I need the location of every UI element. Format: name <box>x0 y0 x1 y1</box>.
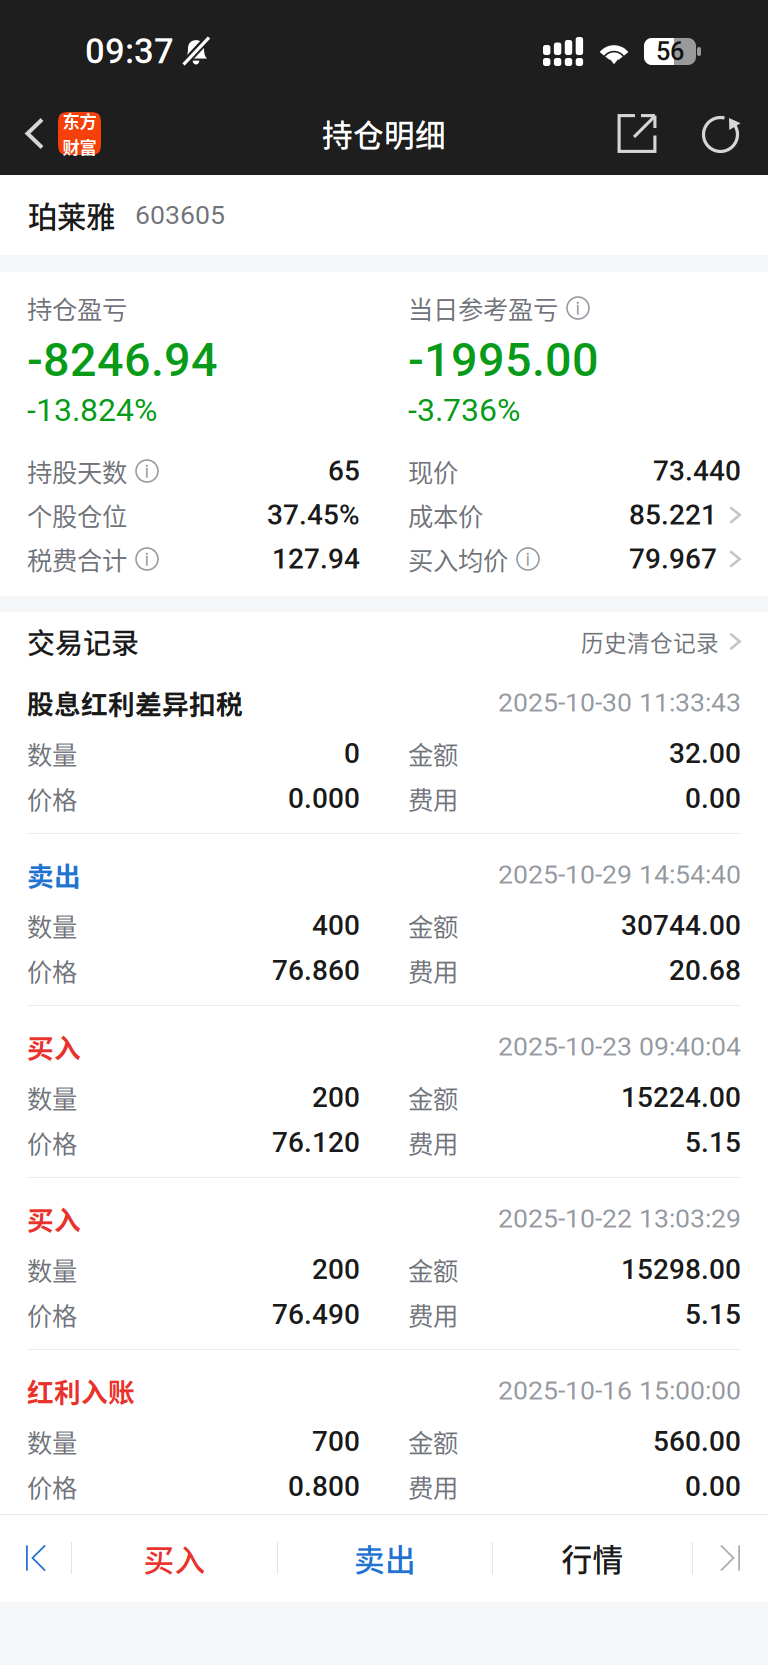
staticText: 15224.00 <box>621 1081 741 1114</box>
staticText: 32.00 <box>669 737 741 770</box>
staticText: 红利入账 <box>27 1371 135 1410</box>
staticText: 东方 <box>62 108 96 133</box>
staticText: 73.440 <box>653 455 741 487</box>
staticText: 行情 <box>561 1536 623 1580</box>
staticText: 持股天数 <box>27 453 127 489</box>
staticText: 数量 <box>27 1251 77 1288</box>
staticText: 个股仓位 <box>27 497 127 533</box>
staticText: 85.221 <box>629 499 717 531</box>
staticText: 5.15 <box>685 1298 741 1331</box>
staticText: 珀莱雅 <box>28 194 115 236</box>
staticText: 价格 <box>27 952 77 989</box>
staticText: 价格 <box>27 780 77 817</box>
staticText: 37.45% <box>267 499 360 531</box>
staticText: 费用 <box>408 1468 458 1505</box>
button[interactable]: Next stock <box>693 1514 767 1602</box>
staticText: 卖出 <box>27 855 81 894</box>
staticText: -8246.94 <box>27 333 218 387</box>
staticText: i <box>525 548 530 570</box>
staticText: 0.00 <box>685 1470 741 1503</box>
staticText: 持仓明细 <box>322 111 446 156</box>
staticText: 买入 <box>27 1199 81 1238</box>
staticText: 买入 <box>27 1027 81 1066</box>
staticText: 56 <box>656 37 684 66</box>
staticText: 财富 <box>62 134 96 159</box>
staticText: 2025-10-23 09:40:04 <box>498 1031 741 1062</box>
staticText: 成本价 <box>408 497 483 533</box>
staticText: 金额 <box>408 735 458 772</box>
staticText: 金额 <box>408 1079 458 1116</box>
button[interactable]: Back <box>19 100 51 166</box>
staticText: 76.860 <box>272 954 360 987</box>
staticText: 历史清仓记录 <box>581 625 719 658</box>
staticText: 价格 <box>27 1124 77 1161</box>
staticText: 数量 <box>27 907 77 944</box>
staticText: 价格 <box>27 1468 77 1505</box>
staticText: 15298.00 <box>621 1253 741 1286</box>
staticText: 股息红利差异扣税 <box>27 683 243 722</box>
staticText: 2025-10-30 11:33:43 <box>498 687 741 718</box>
staticText: -13.824% <box>27 391 157 429</box>
button[interactable]: First stock <box>1 1514 71 1602</box>
staticText: 金额 <box>408 1423 458 1460</box>
staticText: 603605 <box>135 199 225 231</box>
staticText: 交易记录 <box>27 621 139 662</box>
staticText: 0.00 <box>685 782 741 815</box>
staticText: i <box>144 548 149 570</box>
staticText: 09:37 <box>85 31 174 72</box>
staticText: 400 <box>312 909 360 942</box>
staticText: i <box>144 460 149 482</box>
staticText: 20.68 <box>669 954 741 987</box>
staticText: 2025-10-16 15:00:00 <box>498 1375 741 1406</box>
staticText: 价格 <box>27 1296 77 1333</box>
button[interactable]: Refresh <box>690 100 752 166</box>
staticText: -1995.00 <box>408 333 599 387</box>
staticText: 200 <box>312 1253 360 1286</box>
button[interactable]: 行情 <box>493 1514 692 1602</box>
staticText: 560.00 <box>653 1425 741 1458</box>
staticText: 买入均价 <box>408 541 508 577</box>
staticText: 700 <box>312 1425 360 1458</box>
staticText: 费用 <box>408 1296 458 1333</box>
staticText: 现价 <box>408 453 458 489</box>
staticText: 76.120 <box>272 1126 360 1159</box>
staticText: 5.15 <box>685 1126 741 1159</box>
button[interactable]: 历史清仓记录 <box>581 625 741 658</box>
staticText: 0.000 <box>288 782 360 815</box>
staticText: 数量 <box>27 1079 77 1116</box>
staticText: 79.967 <box>629 543 717 575</box>
staticText: 30744.00 <box>621 909 741 942</box>
button[interactable]: 卖出 <box>278 1514 492 1602</box>
staticText: 65 <box>328 455 360 487</box>
staticText: -3.736% <box>408 391 520 429</box>
staticText: 持仓盈亏 <box>27 290 127 326</box>
button[interactable]: East Money <box>58 112 101 155</box>
staticText: 数量 <box>27 735 77 772</box>
staticText: 税费合计 <box>27 541 127 577</box>
staticText: 127.94 <box>272 543 360 575</box>
staticText: 费用 <box>408 952 458 989</box>
button[interactable]: 买入 <box>72 1514 277 1602</box>
staticText: 0 <box>344 737 360 770</box>
staticText: 数量 <box>27 1423 77 1460</box>
staticText: 0.800 <box>288 1470 360 1503</box>
staticText: 76.490 <box>272 1298 360 1331</box>
staticText: 买入 <box>143 1536 205 1580</box>
staticText: i <box>575 297 580 319</box>
staticText: 卖出 <box>354 1536 416 1580</box>
staticText: 2025-10-22 13:03:29 <box>498 1203 741 1234</box>
staticText: 200 <box>312 1081 360 1114</box>
staticText: 2025-10-29 14:54:40 <box>498 859 741 890</box>
staticText: 金额 <box>408 1251 458 1288</box>
staticText: 费用 <box>408 780 458 817</box>
button[interactable]: Share <box>606 100 668 166</box>
staticText: 费用 <box>408 1124 458 1161</box>
staticText: 当日参考盈亏 <box>408 290 558 326</box>
staticText: 金额 <box>408 907 458 944</box>
